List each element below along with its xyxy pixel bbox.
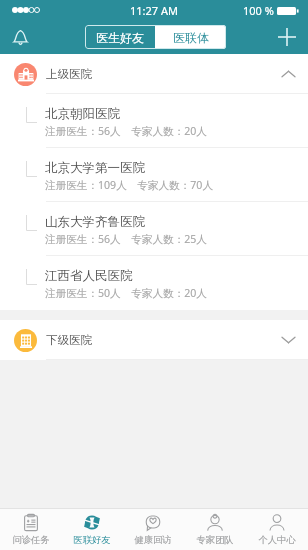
staticText: 个人中心 [258, 534, 296, 546]
staticText: 北京朝阳医院 [45, 106, 120, 122]
button[interactable]: 健康回访 [122, 509, 184, 550]
staticText: 注册医生：56人 专家人数：25人 [45, 232, 207, 246]
staticText: 注册医生：56人 专家人数：20人 [45, 124, 207, 138]
staticText: 100 % [243, 3, 274, 18]
staticText: 专家团队 [196, 534, 234, 546]
button[interactable]: 专家团队 [184, 509, 246, 550]
button[interactable]: 北京大学第一医院 [0, 148, 308, 202]
button[interactable]: 江西省人民医院 [0, 256, 308, 310]
button[interactable]: 医联好友 [61, 509, 122, 550]
staticText: 北京大学第一医院 [45, 160, 145, 176]
staticText: 健康回访 [134, 534, 172, 546]
button[interactable]: 通知 [6, 23, 34, 51]
button[interactable]: 下级医院 [0, 320, 308, 360]
button[interactable]: 山东大学齐鲁医院 [0, 202, 308, 256]
staticText: 医联好友 [73, 534, 111, 546]
staticText: 下级医院 [46, 333, 92, 347]
button[interactable]: 医生好友 [85, 25, 155, 49]
button[interactable]: 上级医院 [0, 54, 308, 94]
staticText: 江西省人民医院 [45, 268, 133, 284]
button[interactable]: 添加 [273, 23, 301, 51]
button[interactable]: 北京朝阳医院 [0, 94, 308, 148]
button[interactable]: 问诊任务 [0, 509, 61, 550]
button[interactable]: 个人中心 [246, 509, 308, 550]
staticText: 注册医生：109人 专家人数：70人 [45, 178, 214, 192]
staticText: 医生好友 [96, 30, 144, 45]
staticText: 问诊任务 [12, 534, 50, 546]
staticText: 注册医生：50人 专家人数：20人 [45, 286, 207, 300]
staticText: 医联体 [173, 30, 209, 45]
staticText: 11:27 AM [130, 3, 178, 18]
staticText: 上级医院 [46, 67, 92, 81]
staticText: 山东大学齐鲁医院 [45, 214, 145, 230]
button[interactable]: 医联体 [155, 25, 226, 49]
